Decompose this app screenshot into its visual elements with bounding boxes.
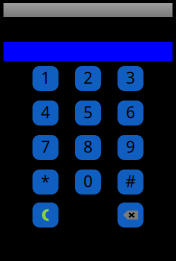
button[interactable]: 6 — [117, 100, 143, 125]
button[interactable]: 5 — [75, 100, 101, 125]
button[interactable]: 1 — [32, 66, 58, 91]
staticText: 8 — [83, 136, 92, 157]
button[interactable]: 7 — [32, 135, 58, 160]
button[interactable]: 2 — [75, 66, 101, 91]
staticText: 3 — [126, 67, 135, 88]
staticText: 6 — [126, 101, 135, 123]
staticText: 7 — [41, 136, 50, 157]
button[interactable]: 9 — [117, 135, 143, 160]
staticText: 1 — [41, 67, 50, 88]
button[interactable]: 8 — [75, 135, 101, 160]
button[interactable]: * — [32, 169, 58, 194]
staticText: 5 — [83, 101, 92, 123]
button[interactable]: Delete — [117, 202, 143, 227]
button[interactable]: Call — [32, 202, 58, 227]
staticText: # — [125, 170, 135, 192]
button[interactable]: 0 — [75, 169, 101, 194]
staticText: 2 — [83, 67, 92, 88]
staticText: 9 — [126, 136, 135, 157]
staticText: 4 — [41, 101, 50, 123]
staticText: * — [41, 170, 50, 192]
button[interactable]: 3 — [117, 66, 143, 91]
button[interactable]: # — [117, 169, 143, 194]
staticText: 0 — [83, 170, 92, 192]
button[interactable]: 4 — [32, 100, 58, 125]
